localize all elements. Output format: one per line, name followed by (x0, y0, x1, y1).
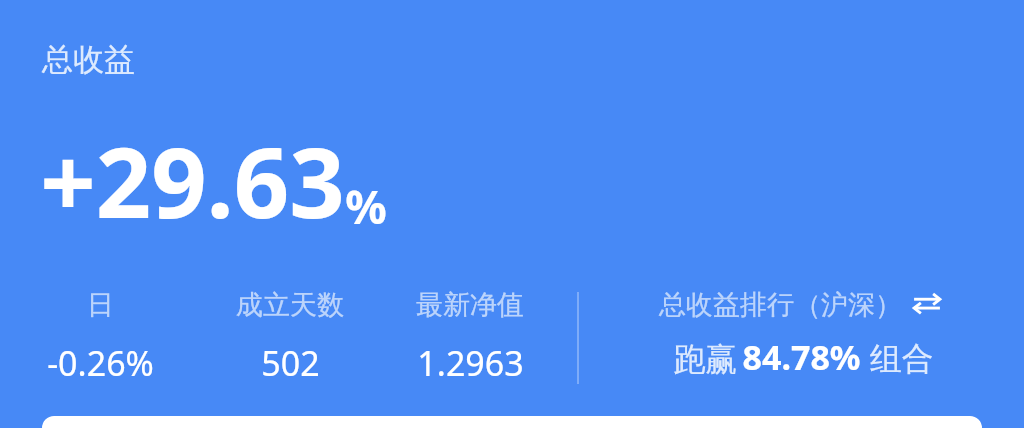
button[interactable]: Switch ranking market (910, 287, 944, 321)
button[interactable]: 成立天数 (200, 288, 380, 386)
button[interactable]: 总收益 (42, 40, 135, 79)
staticText: 总收益 (42, 40, 135, 79)
staticText: +29.63 (40, 114, 345, 246)
button[interactable]: +29.63 (40, 114, 387, 246)
staticText: 总收益排行（沪深） (659, 288, 902, 322)
staticText: 502 (261, 340, 320, 386)
button[interactable]: 最新净值 (380, 288, 560, 386)
staticText: 最新净值 (416, 288, 524, 322)
staticText: 跑赢 (669, 336, 742, 380)
staticText: 日 (87, 288, 114, 322)
staticText: 84.78% (742, 334, 861, 380)
staticText: 组合 (861, 336, 934, 380)
staticText: 1.2963 (417, 340, 524, 386)
staticText: -0.26% (47, 340, 154, 386)
staticText: 成立天数 (236, 288, 344, 322)
button[interactable]: 总收益排行（沪深） (579, 288, 1024, 380)
button[interactable]: 日 (0, 288, 200, 386)
button[interactable] (42, 416, 982, 428)
staticText: % (345, 175, 387, 238)
